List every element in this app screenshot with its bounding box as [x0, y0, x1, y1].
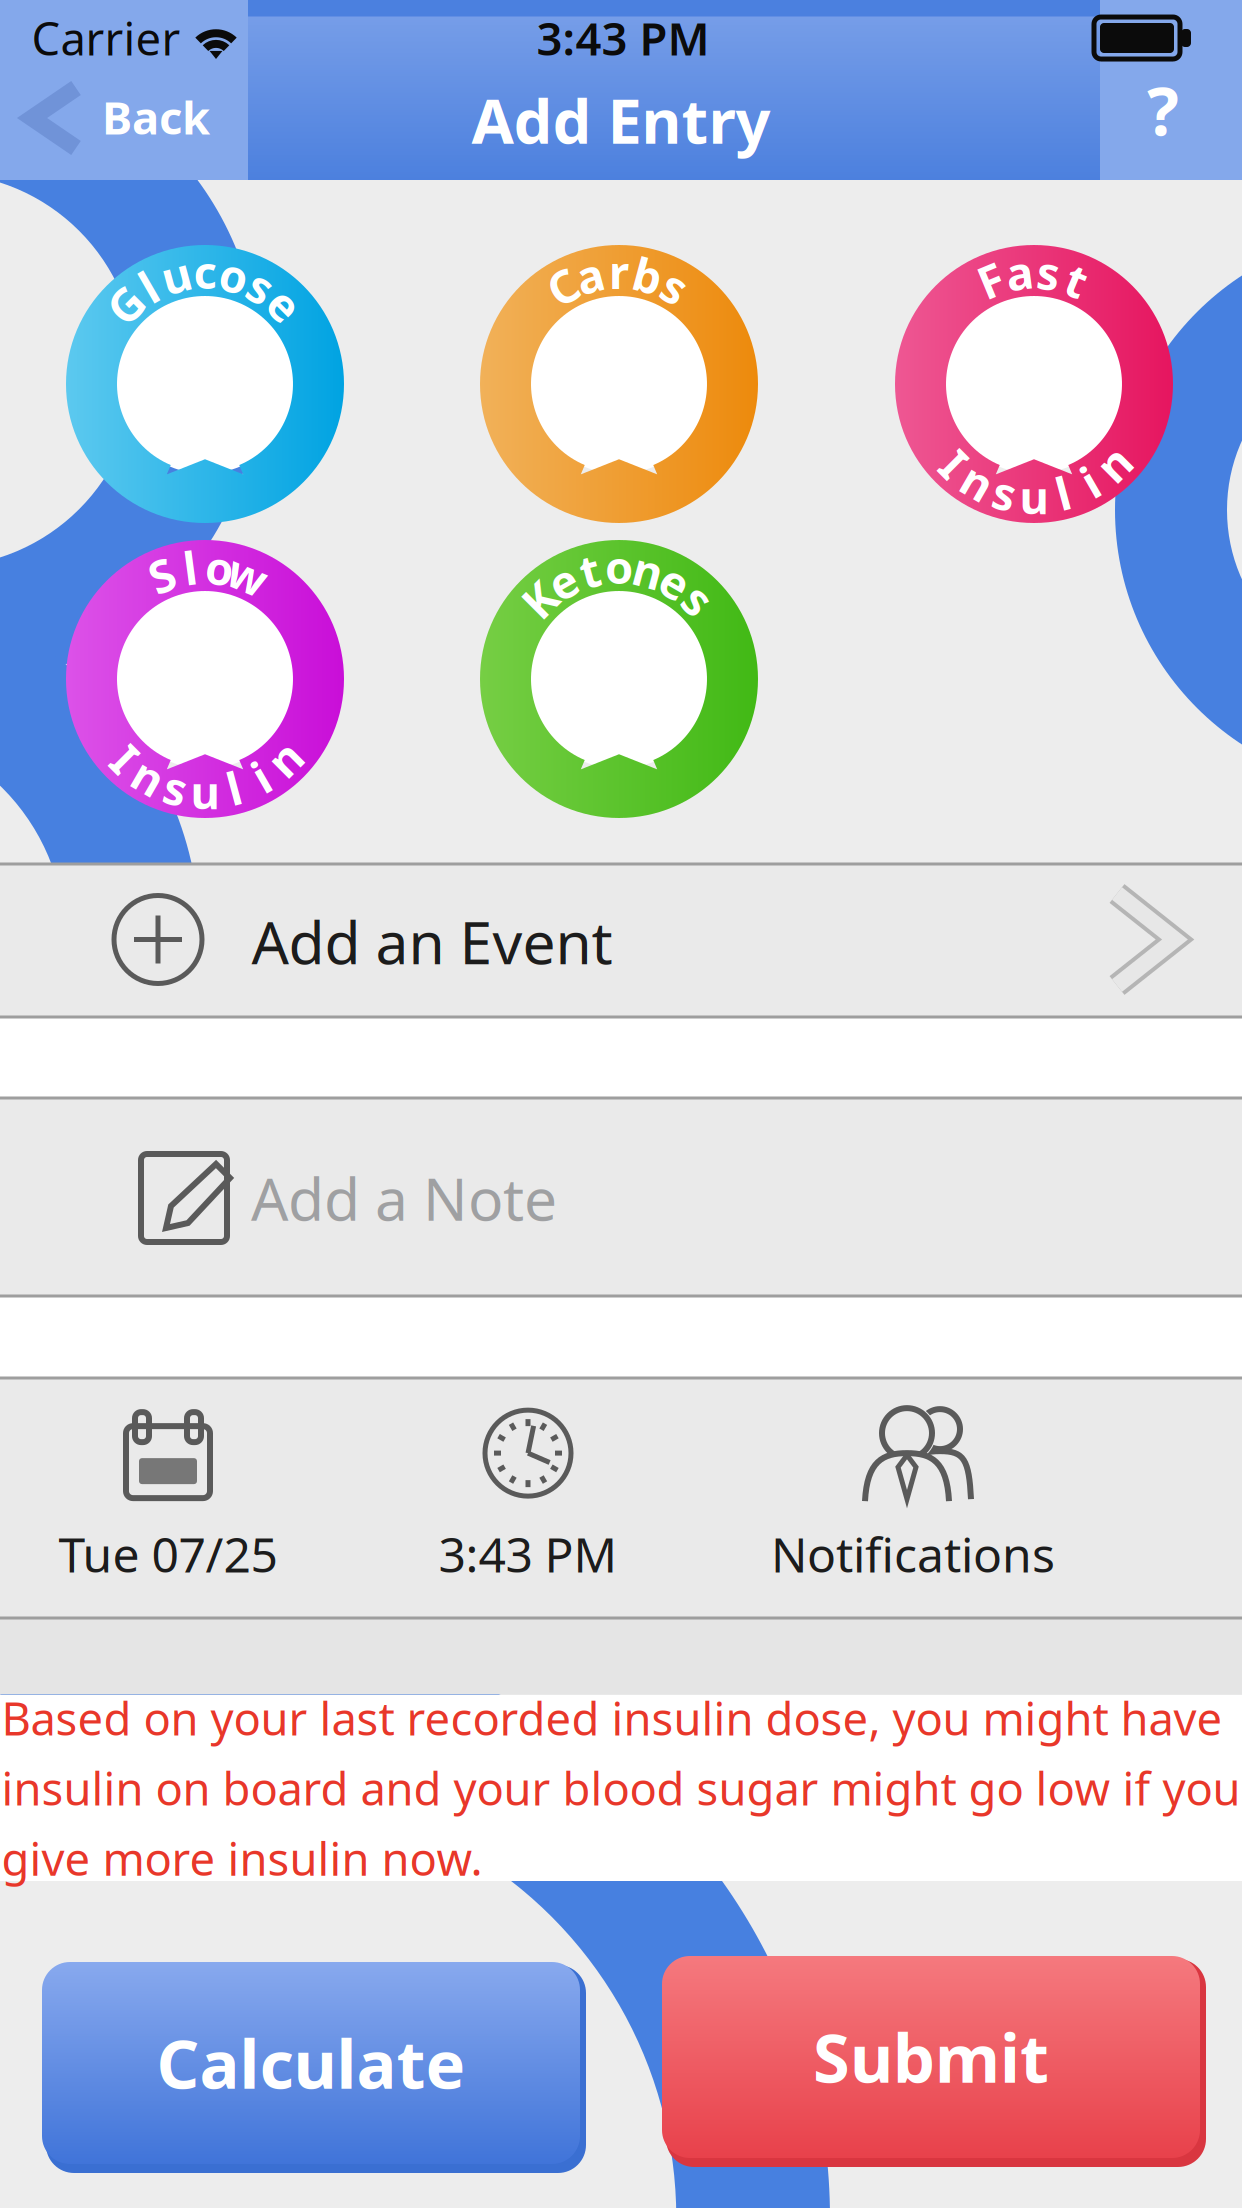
staticText: insulin on board and your blood sugar mi… — [1, 1758, 1240, 1818]
staticText: o — [605, 536, 633, 596]
staticText: l — [227, 758, 241, 818]
staticText: C — [548, 256, 577, 317]
button[interactable]: Help — [1103, 50, 1223, 170]
staticText: Submit — [813, 2013, 1049, 2101]
staticText: e — [662, 551, 689, 612]
button[interactable]: Notifications — [743, 1396, 1083, 1596]
staticText: n — [634, 540, 663, 600]
staticText: I — [116, 728, 134, 789]
button[interactable]: 3:43 PM — [358, 1396, 698, 1596]
staticText: r — [609, 241, 629, 301]
button[interactable]: Submit — [651, 1947, 1211, 2167]
staticText: l — [142, 256, 156, 317]
staticText: b — [634, 245, 663, 305]
staticText: Add a Note — [251, 1159, 557, 1237]
staticText: t — [1067, 250, 1087, 310]
staticText: e — [549, 551, 576, 612]
staticText: o — [206, 537, 234, 597]
staticText: i — [1083, 451, 1097, 512]
staticText: s — [164, 758, 187, 818]
staticText: n — [1099, 433, 1128, 494]
button[interactable]: Back — [12, 63, 232, 173]
button[interactable]: Add an Event — [0, 863, 1242, 1016]
staticText: give more insulin now. — [1, 1828, 482, 1888]
staticText: n — [963, 451, 992, 512]
staticText: s — [993, 463, 1016, 523]
button[interactable]: Calculate — [31, 1953, 591, 2173]
staticText: s — [664, 256, 687, 317]
staticText: n — [134, 746, 163, 807]
staticText: a — [1006, 242, 1033, 302]
staticText: 3:43 PM — [438, 1522, 617, 1586]
staticText: F — [978, 250, 1003, 310]
staticText: e — [271, 274, 298, 334]
staticText: i — [254, 746, 268, 807]
staticText: Based on your last recorded insulin dose… — [1, 1688, 1222, 1748]
staticText: Tue 07/25 — [58, 1522, 277, 1586]
staticText: a — [576, 245, 603, 305]
staticText: Add Entry — [471, 79, 770, 161]
staticText: l — [183, 537, 197, 597]
staticText: 3:43 PM — [536, 8, 709, 68]
staticText: Calculate — [156, 2019, 465, 2107]
staticText: Carrier — [31, 8, 180, 68]
staticText: o — [220, 245, 248, 305]
staticText: u — [161, 245, 190, 305]
staticText: Notifications — [771, 1522, 1055, 1586]
staticText: K — [524, 569, 554, 629]
button[interactable]: Tue 07/25 — [0, 1396, 338, 1596]
staticText: s — [250, 256, 273, 317]
staticText: ? — [1147, 66, 1179, 154]
staticText: Add an Event — [251, 902, 612, 980]
staticText: n — [270, 728, 299, 789]
staticText: t — [580, 540, 600, 600]
staticText: G — [109, 274, 142, 334]
staticText: l — [1056, 463, 1070, 523]
staticText: s — [1037, 242, 1060, 302]
staticText: Back — [102, 87, 210, 147]
staticText: I — [945, 433, 963, 494]
staticText: s — [687, 569, 710, 629]
staticText: u — [1019, 466, 1048, 527]
button[interactable]: Add a Note — [0, 1098, 1242, 1296]
staticText: S — [149, 545, 174, 605]
staticText: c — [193, 241, 216, 301]
staticText: u — [190, 761, 219, 822]
staticText: w — [229, 545, 268, 605]
